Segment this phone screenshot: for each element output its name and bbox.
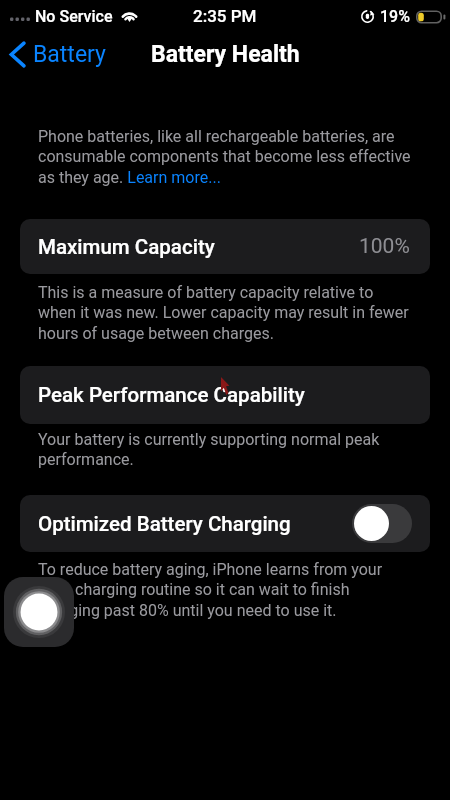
- staticText: Your battery is currently supporting nor…: [38, 430, 380, 469]
- button[interactable]: AssistiveTouch: [4, 577, 74, 647]
- staticText: Battery: [33, 41, 106, 68]
- staticText: 2:35 PM: [193, 6, 257, 26]
- staticText: 19%: [380, 7, 410, 26]
- staticText: Optimized Battery Charging: [38, 512, 291, 536]
- button[interactable]: Battery: [0, 35, 116, 74]
- staticText: Maximum Capacity: [38, 235, 215, 259]
- staticText: Battery Health: [151, 41, 300, 68]
- button[interactable]: Maximum Capacity: [20, 219, 430, 274]
- staticText: This is a measure of battery capacity re…: [38, 283, 409, 343]
- staticText: No Service: [35, 7, 113, 26]
- staticText: 100%: [359, 234, 410, 259]
- button[interactable]: Optimized Battery Charging: [352, 504, 412, 543]
- button[interactable]: Optimized Battery Charging: [20, 495, 430, 552]
- staticText: Phone batteries, like all rechargeable b…: [38, 127, 411, 187]
- staticText: Peak Performance Capability: [38, 383, 305, 407]
- staticText: To reduce battery aging, iPhone learns f…: [38, 560, 383, 620]
- button[interactable]: Peak Performance Capability: [20, 366, 430, 424]
